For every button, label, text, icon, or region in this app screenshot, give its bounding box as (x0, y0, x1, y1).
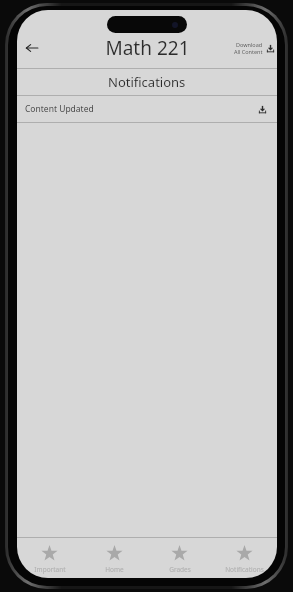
staticText: Home (105, 565, 124, 574)
button[interactable]: Home (82, 538, 147, 578)
button[interactable]: Download (255, 102, 269, 116)
staticText: Content Updated (25, 103, 94, 115)
button[interactable]: Content Updated (17, 96, 277, 122)
button[interactable]: Back (17, 33, 47, 63)
staticText: Notifications (108, 73, 186, 91)
staticText: Math 221 (105, 35, 190, 61)
staticText: Notifications (225, 565, 264, 574)
button[interactable]: Download (232, 38, 277, 58)
staticText: Download (236, 41, 263, 48)
button[interactable]: Notifications (212, 538, 277, 578)
button[interactable]: Important (17, 538, 82, 578)
staticText: Grades (169, 565, 191, 574)
staticText: All Content (234, 48, 263, 55)
button[interactable]: Grades (147, 538, 212, 578)
staticText: Important (34, 565, 66, 574)
